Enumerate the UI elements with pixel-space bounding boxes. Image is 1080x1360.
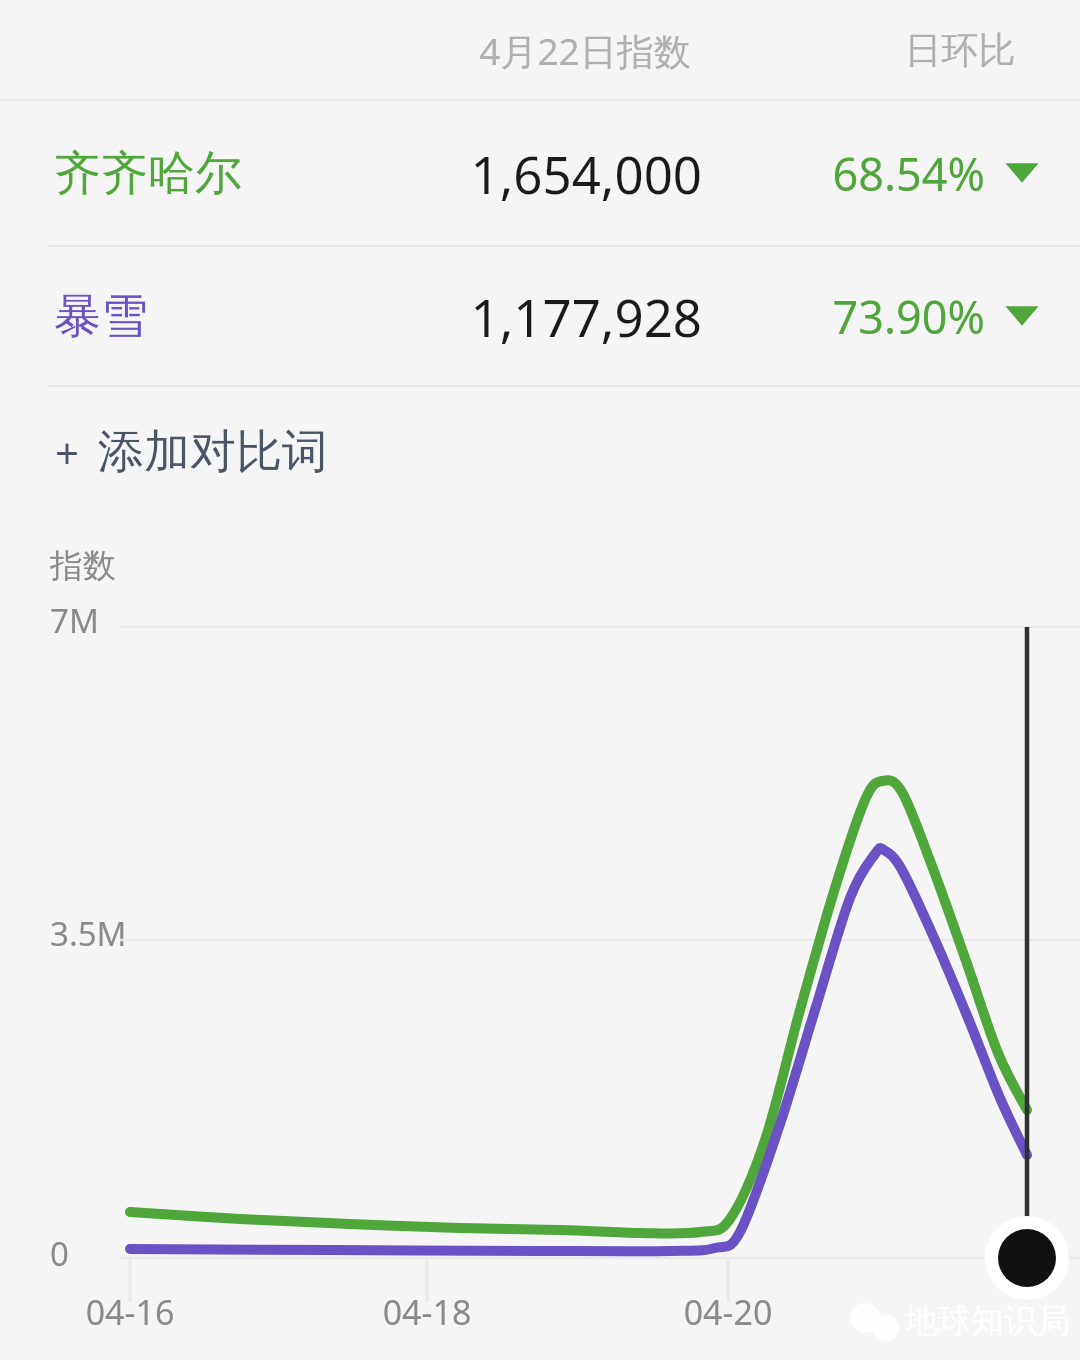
staticText: 3.5M bbox=[50, 911, 127, 956]
staticText: 日环比 bbox=[850, 27, 1070, 74]
staticText: 1,654,000 bbox=[400, 139, 702, 208]
staticText: 68.54% bbox=[755, 143, 985, 204]
other: Decrease bbox=[1000, 294, 1044, 338]
staticText: 暴雪 bbox=[54, 287, 148, 346]
staticText: 73.90% bbox=[755, 286, 985, 347]
staticText: 04-16 bbox=[60, 1289, 200, 1335]
button[interactable]: + bbox=[0, 387, 1080, 517]
staticText: 04-20 bbox=[658, 1289, 798, 1335]
staticText: 1,177,928 bbox=[400, 282, 702, 351]
staticText: 指数 bbox=[50, 545, 116, 587]
staticText: 齐齐哈尔 bbox=[54, 144, 242, 203]
staticText: 04-18 bbox=[357, 1289, 497, 1335]
other: Decrease bbox=[1000, 151, 1044, 195]
staticText: 0 bbox=[50, 1231, 69, 1276]
staticText: 地球知识局 bbox=[905, 1300, 1070, 1342]
staticText: 添加对比词 bbox=[98, 423, 328, 481]
button[interactable]: 齐齐哈尔 bbox=[0, 101, 1080, 245]
staticText: 4月22日指数 bbox=[410, 25, 760, 76]
staticText: + bbox=[55, 424, 80, 481]
button[interactable]: 暴雪 bbox=[0, 247, 1080, 385]
staticText: 7M bbox=[50, 598, 99, 643]
